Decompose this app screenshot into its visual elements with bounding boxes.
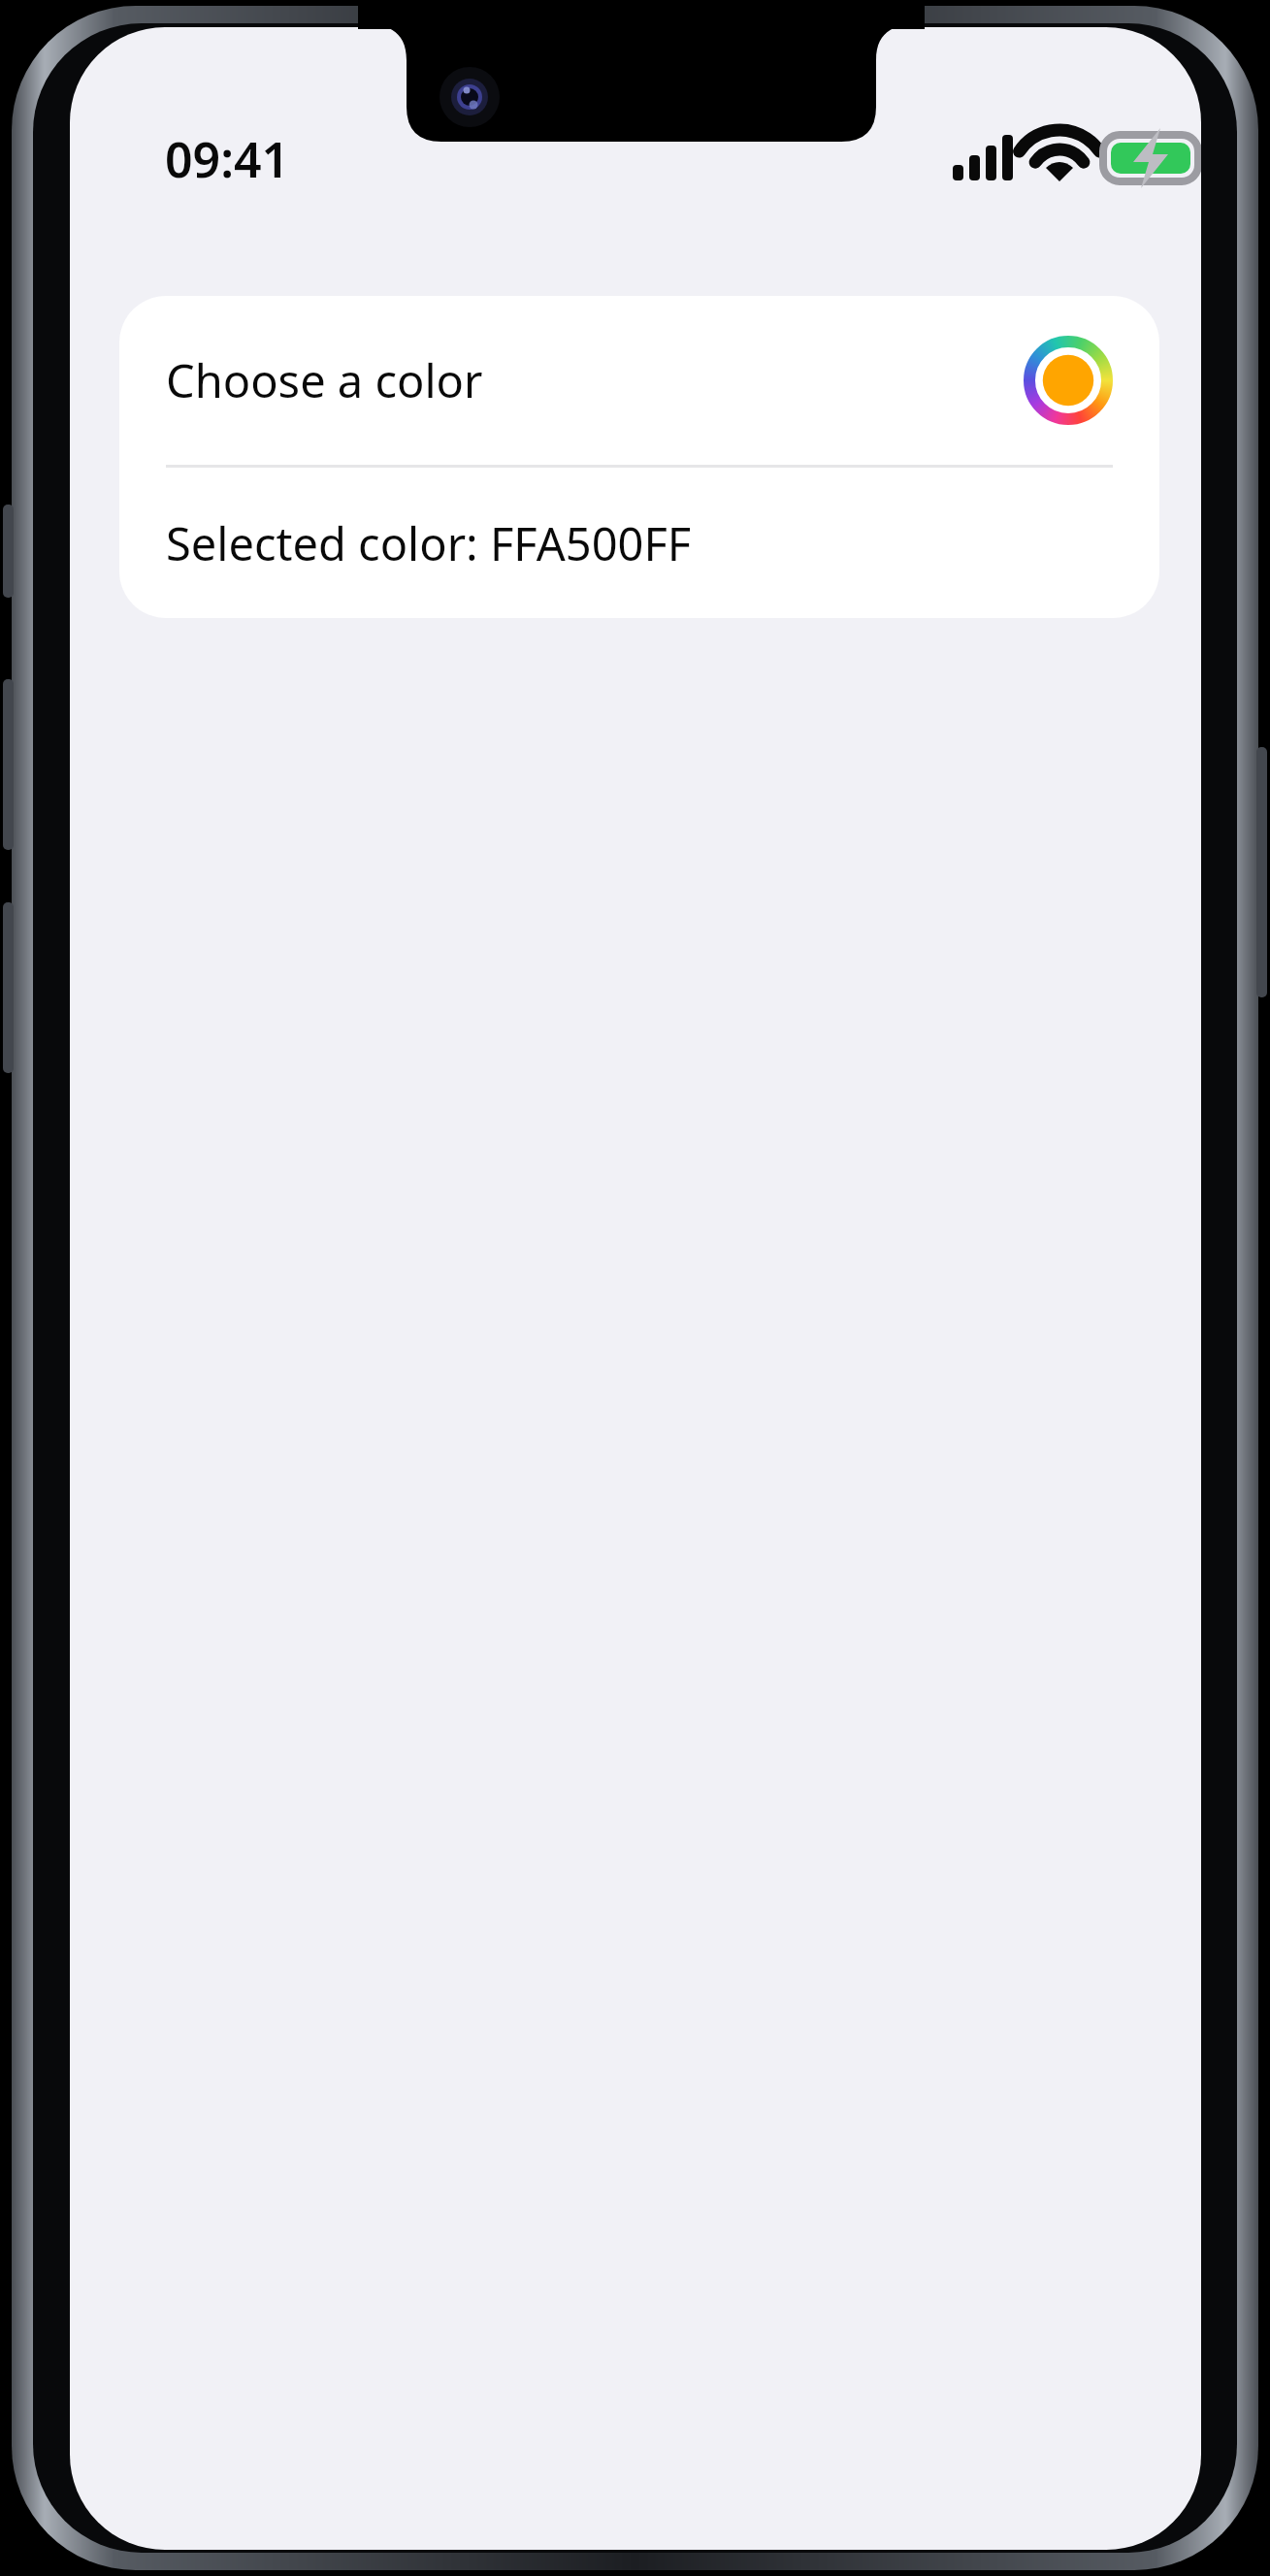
staticText: Selected color: FFA500FF [166,512,692,574]
button[interactable]: Choose a color [119,296,1159,465]
staticText: Choose a color [166,349,483,411]
staticText: 09:41 [165,126,290,192]
button[interactable]: Choose a color [1024,336,1113,425]
button[interactable]: Selected color: FFA500FF [119,468,1159,618]
